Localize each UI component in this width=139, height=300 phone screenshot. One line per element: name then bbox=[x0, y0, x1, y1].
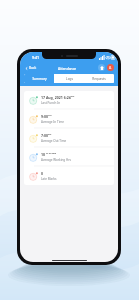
button[interactable]: 7:00 bbox=[29, 129, 109, 147]
staticText: 0 bbox=[41, 171, 44, 176]
button[interactable]: Home bbox=[98, 64, 105, 71]
staticText: PM bbox=[71, 95, 75, 98]
button[interactable]: 17 Aug, 2021 6:24 bbox=[29, 91, 109, 109]
staticText: hr 00 min bbox=[46, 152, 57, 155]
staticText: 17 Aug, 2021 6:24 bbox=[41, 95, 71, 100]
staticText: Last Punch In bbox=[41, 101, 61, 105]
staticText: 7:00 bbox=[41, 133, 48, 138]
staticText: 9:41 bbox=[32, 55, 40, 60]
button[interactable]: Back bbox=[24, 65, 38, 71]
staticText: Average In Time bbox=[41, 120, 64, 124]
staticText: Average Working Hrs bbox=[41, 158, 71, 162]
staticText: Average Out Time bbox=[41, 139, 67, 143]
button[interactable]: Logs bbox=[54, 74, 84, 83]
button[interactable]: Summary bbox=[24, 74, 54, 83]
staticText: A bbox=[109, 66, 112, 70]
staticText: Attendance bbox=[58, 66, 77, 70]
button[interactable]: 10 bbox=[29, 148, 109, 166]
staticText: Summary bbox=[32, 77, 47, 81]
button[interactable]: Profile bbox=[107, 64, 114, 71]
staticText: Back bbox=[29, 66, 37, 70]
button[interactable]: 0 bbox=[29, 167, 109, 185]
staticText: PM bbox=[48, 133, 52, 136]
staticText: Requests bbox=[92, 77, 106, 81]
staticText: Logs bbox=[66, 77, 73, 81]
button[interactable]: 9:00 bbox=[29, 110, 109, 128]
staticText: 9:00 bbox=[41, 114, 48, 119]
staticText: Late Marks bbox=[41, 177, 57, 181]
button[interactable]: Requests bbox=[84, 74, 114, 83]
staticText: 10 bbox=[41, 152, 46, 157]
staticText: AM bbox=[48, 114, 52, 117]
